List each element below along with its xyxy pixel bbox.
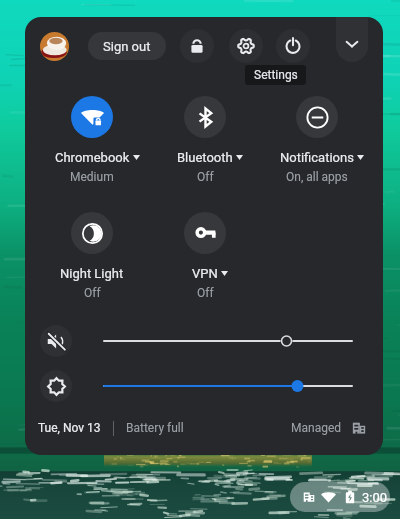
button[interactable]: VPN [149, 212, 261, 300]
staticText: Chromebook [55, 150, 130, 165]
button[interactable]: Chromebook [36, 96, 148, 184]
button[interactable]: Sign out [88, 32, 166, 60]
staticText: Medium [70, 170, 114, 184]
staticText: 3:00 [362, 490, 388, 505]
staticText: Managed [291, 421, 342, 435]
button[interactable]: System status [290, 482, 390, 512]
button[interactable]: Collapse [336, 17, 368, 62]
staticText: Battery full [126, 421, 184, 435]
staticText: Off [197, 170, 214, 184]
staticText: VPN [192, 266, 218, 281]
button[interactable]: Bluetooth [149, 96, 261, 184]
button[interactable]: Tue, Nov 13 [38, 421, 101, 435]
staticText: Off [84, 286, 101, 300]
button[interactable]: Volume [40, 325, 72, 357]
staticText: Night Light [60, 266, 124, 281]
button[interactable]: Lock [180, 29, 214, 63]
button[interactable]: Notifications [261, 96, 373, 184]
staticText: Settings [254, 68, 298, 82]
button[interactable]: Volume level [96, 329, 360, 353]
button[interactable]: Power [276, 29, 310, 63]
button[interactable]: Managed [291, 415, 366, 441]
button[interactable]: Night Light [36, 212, 148, 300]
staticText: On, all apps [286, 170, 348, 184]
staticText: Notifications [280, 150, 354, 165]
button[interactable]: Account [40, 32, 69, 61]
button[interactable]: Settings [229, 29, 263, 63]
button[interactable]: Brightness [40, 370, 72, 402]
staticText: Bluetooth [177, 150, 233, 165]
staticText: Sign out [103, 39, 151, 54]
button[interactable]: Brightness level [96, 374, 360, 398]
staticText: Off [197, 286, 214, 300]
